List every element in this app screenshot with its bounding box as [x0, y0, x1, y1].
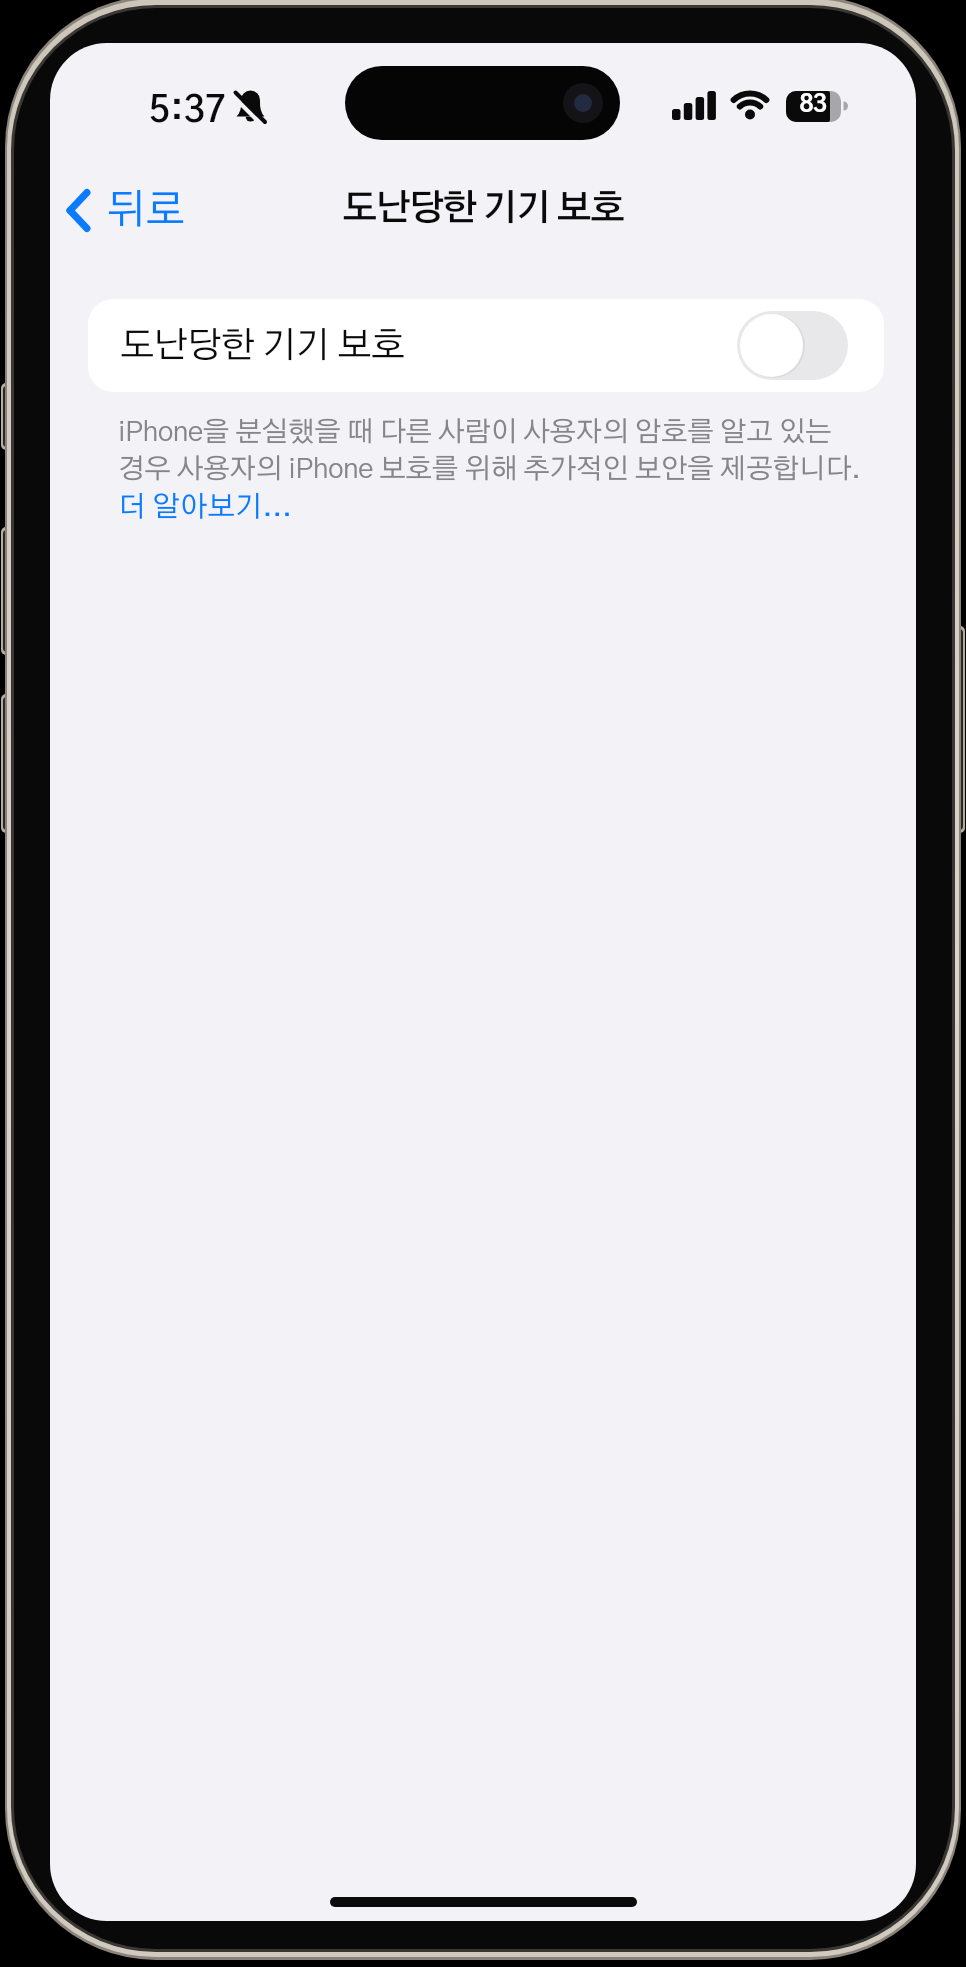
- button[interactable]: 뒤로: [60, 181, 200, 241]
- button[interactable]: [737, 311, 848, 380]
- staticText: 뒤로: [106, 190, 185, 231]
- button[interactable]: 도난당한 기기 보호: [88, 299, 884, 392]
- staticText: iPhone을 분실했을 때 다른 사람이 사용자의 암호를 알고 있는 경우 …: [118, 419, 861, 484]
- staticText: 83: [781, 93, 845, 117]
- staticText: 도난당한 기기 보호: [120, 328, 405, 364]
- staticText: 5:37: [149, 92, 227, 129]
- staticText: 도난당한 기기 보호: [342, 191, 624, 227]
- button[interactable]: 더 알아보기...: [118, 493, 292, 522]
